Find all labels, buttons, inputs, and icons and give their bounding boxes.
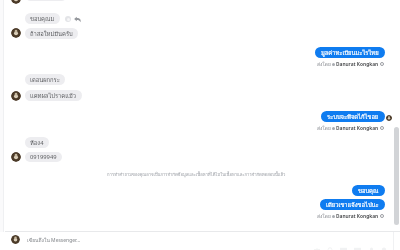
staticText: ถ้าสอใหม่มีนครับ	[30, 29, 73, 38]
staticText: มูลค่าทะเบียนมะไรไทย	[321, 48, 379, 57]
button[interactable]: Reply	[73, 15, 81, 23]
staticText: เขียนถึงใน Messenger...	[27, 236, 81, 244]
button[interactable]: ส่งโดย	[316, 124, 385, 132]
staticText: 09199949	[30, 153, 57, 161]
button[interactable]: 09199949	[25, 152, 62, 162]
button[interactable]: ส่งโดย	[316, 212, 385, 220]
staticText: ขอบคุณ	[358, 186, 379, 195]
button[interactable]: เดียวเขาแจ้งขอไปนะ	[320, 199, 385, 210]
staticText: ห้อง4	[30, 138, 44, 147]
staticText: ระบบจะพิจดไก้ไขอย	[327, 112, 379, 121]
button[interactable]: เขียนถึงใน Messenger...	[11, 232, 400, 247]
button[interactable]: เดอนผกกระ	[25, 74, 65, 85]
staticText: Danurat Kongkan	[336, 61, 379, 68]
staticText: ส่งโดย	[317, 60, 331, 68]
button[interactable]: มูลค่าทะเบียนมะไรไทย	[315, 47, 385, 58]
button[interactable]: ห้อง4	[25, 137, 49, 148]
button[interactable]: ส่งโดย	[316, 60, 385, 68]
staticText: การทำคำถามของคุณอาจเป็นการจำกัดข้อมูลและ…	[107, 171, 286, 178]
button[interactable]: แคทผลไปราคแม้ว	[25, 90, 82, 101]
staticText: Danurat Kongkan	[336, 213, 379, 220]
staticText: เดอนผกกระ	[30, 75, 60, 84]
button[interactable]: ถ้าสอใหม่มีนครับ	[25, 28, 78, 39]
staticText: ส่งโดย	[317, 124, 331, 132]
staticText: ขอบคุณม	[30, 14, 55, 23]
staticText: ส่งโดย	[317, 212, 331, 220]
button[interactable]: ระบบจะพิจดไก้ไขอย	[321, 111, 385, 122]
staticText: เดียวเขาแจ้งขอไปนะ	[326, 200, 379, 209]
staticText: Danurat Kongkan	[336, 125, 379, 132]
staticText: แคทผลไปราคแม้ว	[30, 91, 77, 100]
button[interactable]: ขอบคุณ	[352, 185, 385, 196]
button[interactable]: ขอบคุณม	[25, 13, 60, 24]
button[interactable]: ครับผมรับทร	[25, 0, 67, 1]
button[interactable]: React with emoji	[64, 15, 72, 23]
